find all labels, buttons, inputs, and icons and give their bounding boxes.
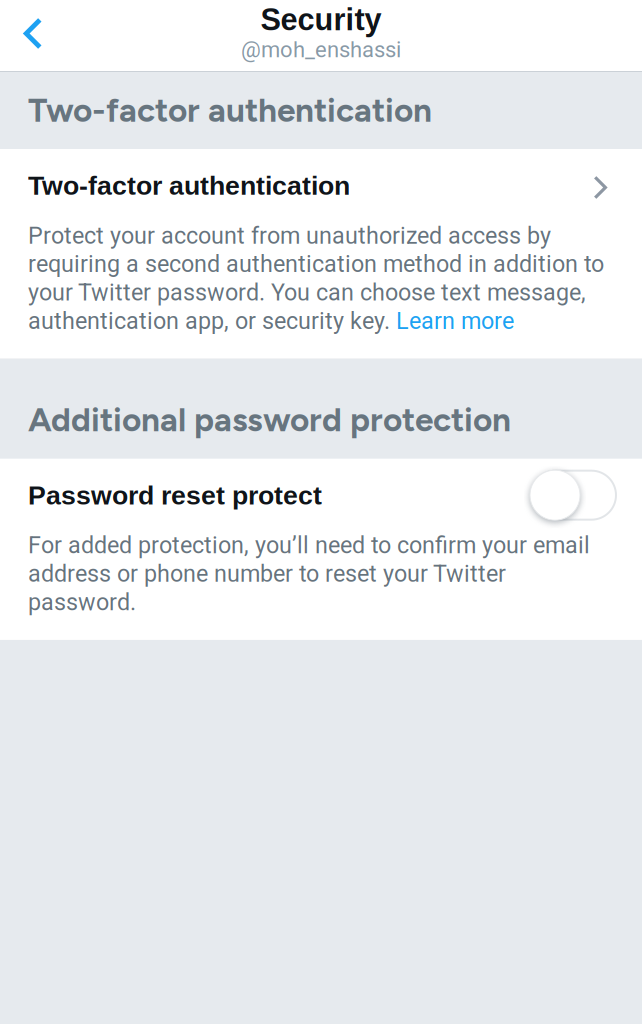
staticText: Two-factor authentication bbox=[28, 90, 432, 130]
staticText: authentication app, or security key. bbox=[28, 307, 396, 335]
staticText: Learn more bbox=[396, 307, 514, 335]
staticText: password. bbox=[28, 589, 136, 616]
staticText: your Twitter password. You can choose te… bbox=[28, 279, 586, 306]
staticText: Two-factor authentication bbox=[28, 171, 350, 200]
staticText: Security bbox=[260, 2, 381, 37]
button[interactable]: Password reset protect bbox=[531, 470, 614, 520]
staticText: @moh_enshassi bbox=[241, 37, 401, 62]
staticText: Protect your account from unauthorized a… bbox=[28, 222, 551, 249]
staticText: For added protection, you’ll need to con… bbox=[28, 532, 590, 559]
button[interactable]: Learn more bbox=[396, 307, 514, 335]
button[interactable]: Two-factor authentication bbox=[0, 149, 642, 222]
staticText: requiring a second authentication method… bbox=[28, 250, 604, 278]
button[interactable]: Back bbox=[0, 0, 66, 71]
staticText: address or phone number to reset your Tw… bbox=[28, 560, 506, 587]
staticText: Password reset protect bbox=[28, 480, 322, 510]
staticText: Additional password protection bbox=[28, 400, 511, 440]
